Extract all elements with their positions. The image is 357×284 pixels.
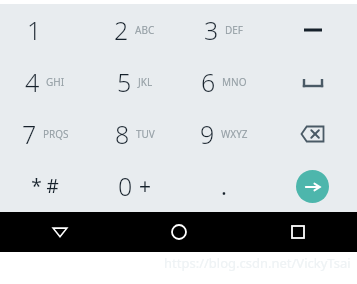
button[interactable]: .	[179, 160, 268, 212]
staticText: TUV	[136, 127, 155, 141]
button[interactable]: 0	[90, 160, 179, 212]
button[interactable]: Dash	[268, 4, 357, 56]
button[interactable]: 7	[0, 108, 90, 160]
staticText: +	[139, 172, 152, 201]
staticText: 8	[115, 117, 130, 151]
staticText: 2	[114, 13, 129, 47]
staticText: 1	[27, 13, 42, 47]
button[interactable]: Enter	[296, 170, 329, 203]
button[interactable]: 4	[0, 56, 90, 108]
staticText: 7	[22, 117, 37, 151]
staticText: 6	[201, 65, 216, 99]
button[interactable]: 5	[90, 56, 179, 108]
staticText: 4	[25, 65, 40, 99]
button[interactable]: Home	[119, 212, 238, 252]
staticText: WXYZ	[221, 127, 248, 141]
button[interactable]: * #	[0, 160, 90, 212]
staticText: 3	[204, 13, 219, 47]
staticText: 0	[118, 169, 133, 203]
staticText: MNO	[222, 75, 247, 89]
staticText: * #	[31, 173, 59, 199]
staticText: PRQS	[43, 127, 69, 141]
staticText: JKL	[138, 75, 153, 89]
staticText: ABC	[135, 23, 155, 37]
button[interactable]: Backspace	[268, 108, 357, 160]
button[interactable]: 3	[179, 4, 268, 56]
button[interactable]: 6	[179, 56, 268, 108]
button[interactable]: 9	[179, 108, 268, 160]
staticText: https://blog.csdn.net/VickyTsai	[164, 254, 351, 272]
button[interactable]: Back	[0, 212, 119, 252]
button[interactable]: 1	[0, 4, 90, 56]
staticText: 9	[200, 117, 215, 151]
button[interactable]: 2	[90, 4, 179, 56]
staticText: 5	[117, 65, 132, 99]
button[interactable]: 8	[90, 108, 179, 160]
staticText: .	[221, 171, 227, 201]
staticText: DEF	[225, 23, 244, 37]
staticText: GHI	[46, 75, 65, 89]
button[interactable]: Recent apps	[238, 212, 357, 252]
button[interactable]: Space	[268, 56, 357, 108]
